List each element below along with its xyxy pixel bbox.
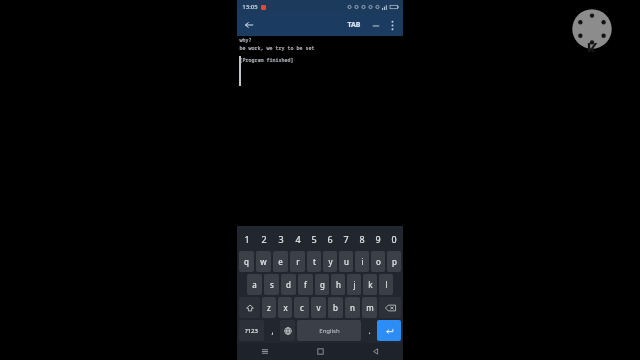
- button[interactable]: Recents: [237, 343, 293, 360]
- staticText: y: [328, 256, 333, 267]
- staticText: f: [304, 279, 307, 290]
- staticText: o: [376, 256, 381, 267]
- staticText: 5: [311, 233, 317, 245]
- button[interactable]: d: [281, 274, 296, 295]
- staticText: a: [252, 279, 257, 290]
- staticText: j: [353, 279, 356, 290]
- button[interactable]: g: [315, 274, 329, 295]
- button[interactable]: m: [362, 297, 377, 318]
- staticText: x: [283, 302, 288, 313]
- button[interactable]: t: [307, 251, 321, 272]
- staticText: why?: [239, 37, 252, 44]
- button[interactable]: 9: [370, 228, 385, 249]
- button[interactable]: v: [311, 297, 326, 318]
- staticText: m: [366, 302, 374, 313]
- button[interactable]: ?123: [239, 320, 264, 341]
- staticText: q: [244, 256, 249, 267]
- button[interactable]: r: [290, 251, 305, 272]
- staticText: 9: [375, 233, 381, 245]
- staticText: d: [286, 279, 291, 290]
- button[interactable]: c: [294, 297, 309, 318]
- button[interactable]: Shift: [239, 297, 260, 318]
- button[interactable]: 3: [273, 228, 289, 249]
- staticText: be work, we try to be set: [239, 45, 315, 52]
- staticText: 7: [343, 233, 349, 245]
- button[interactable]: Backspace: [379, 297, 401, 318]
- button[interactable]: q: [239, 251, 254, 272]
- button[interactable]: 5: [306, 228, 321, 249]
- staticText: l: [385, 279, 388, 290]
- button[interactable]: l: [379, 274, 393, 295]
- staticText: i: [361, 256, 364, 267]
- staticText: [Program finished]: [239, 57, 294, 64]
- staticText: ,: [271, 325, 274, 336]
- button[interactable]: h: [331, 274, 345, 295]
- button[interactable]: j: [347, 274, 361, 295]
- staticText: r: [296, 256, 300, 267]
- button[interactable]: a: [247, 274, 262, 295]
- button[interactable]: f: [298, 274, 313, 295]
- button[interactable]: w: [256, 251, 271, 272]
- staticText: ?123: [245, 327, 258, 335]
- staticText: z: [267, 302, 271, 313]
- button[interactable]: ,: [266, 320, 278, 341]
- button[interactable]: z: [262, 297, 276, 318]
- staticText: p: [392, 256, 397, 267]
- button[interactable]: b: [328, 297, 343, 318]
- button[interactable]: Home: [293, 343, 348, 360]
- button[interactable]: 0: [386, 228, 401, 249]
- button[interactable]: Change language: [280, 320, 295, 341]
- button[interactable]: 6: [322, 228, 337, 249]
- staticText: g: [320, 279, 325, 290]
- button[interactable]: English: [297, 320, 361, 341]
- button[interactable]: More options: [384, 17, 400, 33]
- button[interactable]: y: [323, 251, 337, 272]
- staticText: K: [586, 38, 598, 52]
- button[interactable]: i: [355, 251, 369, 272]
- staticText: 1: [244, 233, 250, 245]
- staticText: 6: [327, 233, 333, 245]
- button[interactable]: x: [278, 297, 292, 318]
- button[interactable]: k: [363, 274, 377, 295]
- button[interactable]: TAB: [344, 16, 364, 34]
- staticText: .: [368, 325, 371, 336]
- staticText: 13:05: [242, 3, 258, 11]
- button[interactable]: s: [264, 274, 279, 295]
- staticText: TAB: [347, 20, 361, 30]
- staticText: 4: [295, 233, 301, 245]
- staticText: s: [270, 279, 274, 290]
- button[interactable]: Minimize: [368, 17, 384, 33]
- button[interactable]: 4: [290, 228, 305, 249]
- staticText: e: [278, 256, 283, 267]
- button[interactable]: 8: [354, 228, 369, 249]
- staticText: 8: [359, 233, 365, 245]
- staticText: w: [260, 256, 267, 267]
- button[interactable]: p: [387, 251, 401, 272]
- button[interactable]: Back: [348, 343, 403, 360]
- button[interactable]: e: [273, 251, 288, 272]
- button[interactable]: n: [345, 297, 360, 318]
- staticText: 0: [391, 233, 397, 245]
- button[interactable]: 2: [256, 228, 272, 249]
- staticText: 2: [261, 233, 267, 245]
- staticText: v: [316, 302, 321, 313]
- staticText: c: [300, 302, 304, 313]
- button[interactable]: Back: [241, 17, 257, 33]
- button[interactable]: .: [363, 320, 375, 341]
- button[interactable]: o: [371, 251, 385, 272]
- staticText: h: [336, 279, 341, 290]
- button[interactable]: 7: [338, 228, 353, 249]
- staticText: u: [344, 256, 349, 267]
- staticText: k: [368, 279, 373, 290]
- staticText: n: [350, 302, 355, 313]
- staticText: 3: [278, 233, 284, 245]
- staticText: t: [313, 256, 316, 267]
- staticText: b: [333, 302, 338, 313]
- button[interactable]: u: [339, 251, 353, 272]
- button[interactable]: 1: [239, 228, 255, 249]
- staticText: English: [319, 327, 340, 335]
- button[interactable]: Enter: [377, 320, 401, 341]
